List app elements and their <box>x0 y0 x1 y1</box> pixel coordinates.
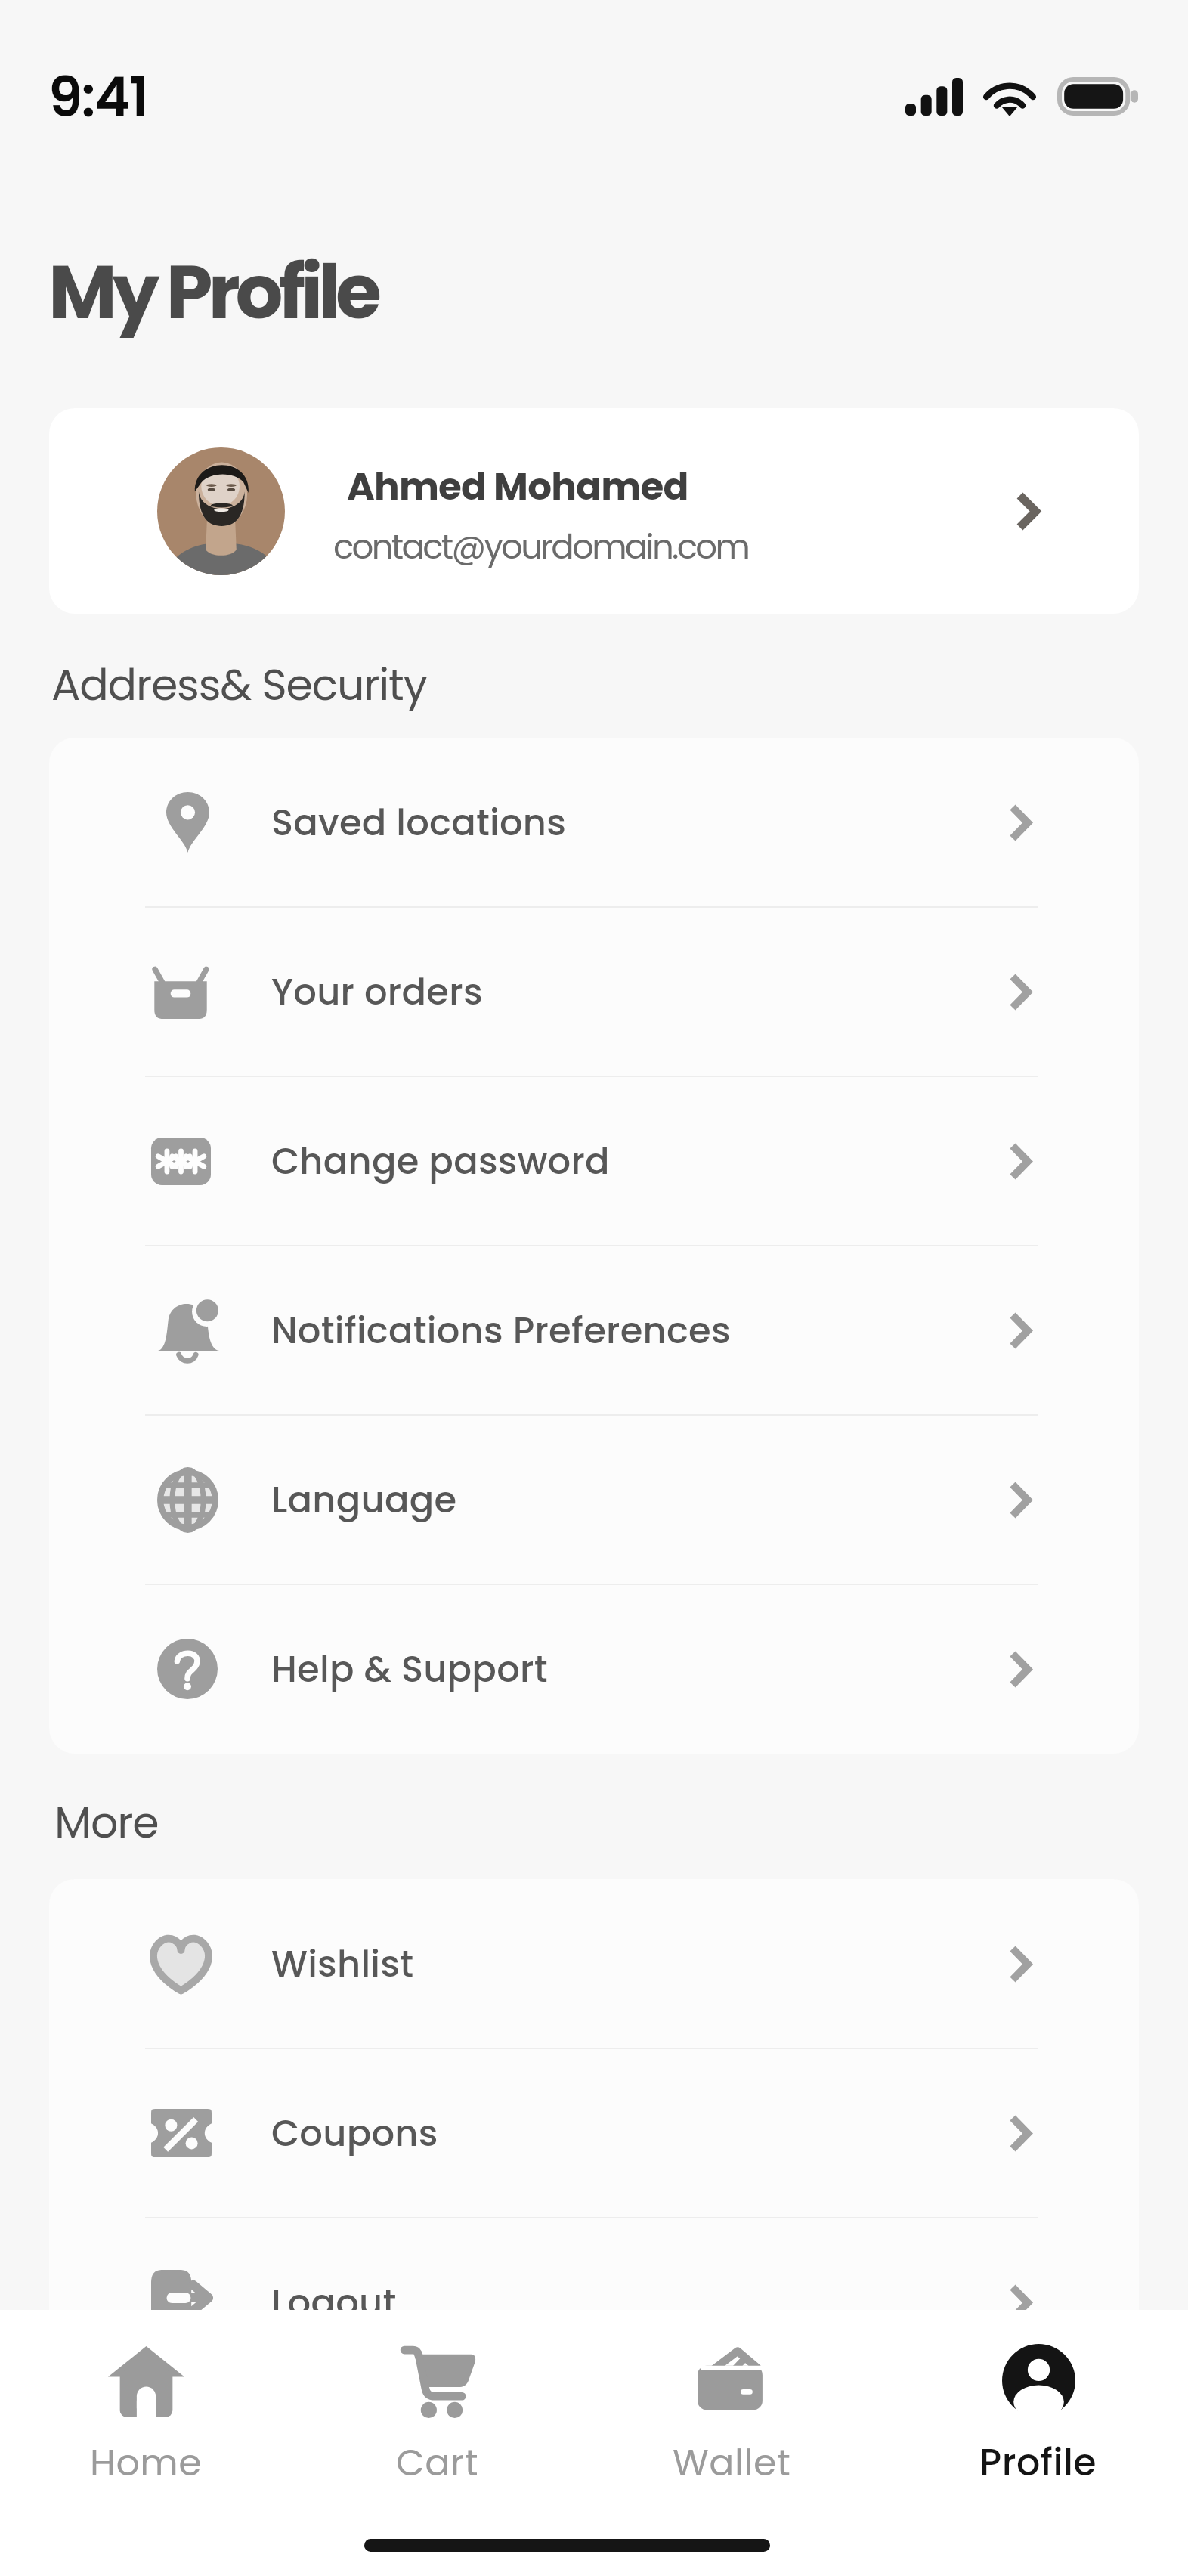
button[interactable]: Your orders <box>49 907 1139 1076</box>
staticText: 9:41 <box>48 59 148 135</box>
other: Open <box>1009 1311 1032 1350</box>
button[interactable]: Saved locations <box>49 738 1139 907</box>
other: Open <box>1009 1650 1032 1689</box>
button[interactable]: Logout <box>49 2218 1139 2387</box>
other: Open <box>1009 1481 1032 1519</box>
staticText: Profile <box>979 2437 1097 2489</box>
other: Open <box>1016 491 1040 531</box>
other: Profile <box>1001 2342 1077 2419</box>
button[interactable]: Help & Support <box>49 1584 1139 1754</box>
button[interactable]: Home <box>48 2310 244 2537</box>
staticText: Ahmed Mohamed <box>347 460 688 513</box>
staticText: Wishlist <box>271 1939 414 1989</box>
button[interactable]: Wishlist <box>49 1879 1139 2048</box>
staticText: Notifications Preferences <box>271 1305 731 1356</box>
staticText: Logout <box>271 2277 397 2328</box>
button[interactable]: Coupons <box>49 2048 1139 2218</box>
button[interactable]: Language <box>49 1415 1139 1584</box>
staticText: contact@yourdomain.com <box>333 523 749 571</box>
staticText: Cart <box>396 2437 479 2489</box>
button[interactable]: Wallet <box>633 2310 830 2537</box>
other: Open <box>1009 2283 1032 2322</box>
other: Open <box>1009 803 1032 842</box>
button[interactable]: Notifications Preferences <box>49 1246 1139 1415</box>
other: Open <box>1009 1142 1032 1181</box>
staticText: Wallet <box>673 2437 791 2489</box>
button[interactable]: Ahmed Mohamed <box>49 408 1139 614</box>
other: Home <box>108 2342 184 2419</box>
staticText: Address& Security <box>51 655 427 715</box>
staticText: Saved locations <box>271 797 567 848</box>
other: Open <box>1009 973 1032 1011</box>
staticText: Your orders <box>271 967 483 1017</box>
staticText: Home <box>90 2437 203 2489</box>
staticText: More <box>54 1792 159 1853</box>
staticText: Help & Support <box>271 1644 548 1695</box>
button[interactable]: Change password <box>49 1076 1139 1246</box>
other: Wallet <box>694 2342 770 2419</box>
staticText: My Profile <box>48 240 377 345</box>
other: Cart <box>400 2342 476 2419</box>
staticText: Coupons <box>271 2108 438 2159</box>
other: Open <box>1009 1945 1032 1983</box>
button[interactable]: Cart <box>339 2310 536 2537</box>
other: Open <box>1009 2114 1032 2153</box>
staticText: Language <box>271 1475 457 1525</box>
button[interactable]: Profile <box>940 2310 1137 2537</box>
staticText: Change password <box>271 1136 610 1187</box>
